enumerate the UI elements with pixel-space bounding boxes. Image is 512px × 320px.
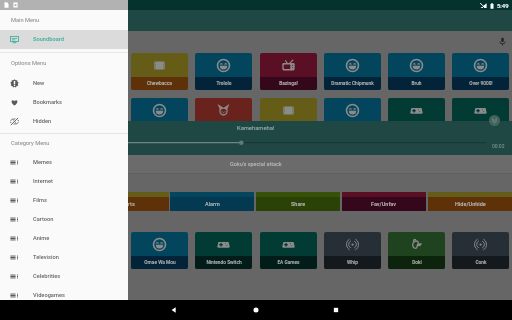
- button[interactable]: [452, 98, 509, 135]
- button[interactable]: Chewbacca: [131, 53, 188, 90]
- button[interactable]: Fav/Unfav: [342, 192, 426, 211]
- button[interactable]: Films: [0, 191, 128, 210]
- staticText: Fav/Unfav: [371, 201, 397, 207]
- button[interactable]: Back: [168, 304, 180, 316]
- staticText: Nintendo Switch: [206, 260, 242, 266]
- button[interactable]: Anime: [0, 229, 128, 248]
- button[interactable]: [324, 98, 381, 135]
- staticText: Cartoon: [33, 216, 54, 223]
- button[interactable]: Dramatic Chipmunk: [324, 53, 381, 90]
- button[interactable]: [260, 98, 317, 135]
- staticText: Celebrities: [33, 273, 61, 280]
- staticText: Chewbacca: [147, 81, 172, 87]
- button[interactable]: Hide/Unhide: [428, 192, 512, 211]
- button[interactable]: Nintendo Switch: [195, 232, 252, 269]
- button[interactable]: [388, 98, 445, 135]
- button[interactable]: New: [0, 74, 128, 93]
- button[interactable]: Alerts: [85, 192, 169, 211]
- button[interactable]: Conk: [452, 232, 509, 269]
- staticText: Anime: [33, 235, 50, 242]
- staticText: Videogames: [33, 292, 65, 299]
- button[interactable]: Trololo: [195, 53, 252, 90]
- button[interactable]: Hidden: [0, 112, 128, 131]
- staticText: Hidden: [33, 118, 52, 125]
- staticText: Doki: [412, 260, 422, 266]
- button[interactable]: [131, 98, 188, 135]
- button[interactable]: EA Games: [260, 232, 317, 269]
- button[interactable]: Memes: [0, 153, 128, 172]
- staticText: Kamehameha!: [237, 125, 275, 132]
- button[interactable]: Internet: [0, 172, 128, 191]
- staticText: 00:02: [492, 143, 505, 149]
- staticText: Soundboard: [33, 36, 64, 43]
- staticText: Conk: [475, 260, 487, 266]
- button[interactable]: Alarm: [170, 192, 254, 211]
- staticText: Whip: [347, 260, 358, 266]
- staticText: Bazinga!: [279, 81, 298, 87]
- staticText: Goku's special attack: [230, 161, 282, 167]
- button[interactable]: Collapse player: [489, 115, 500, 126]
- button[interactable]: Whip: [324, 232, 381, 269]
- button[interactable]: Doki: [388, 232, 445, 269]
- staticText: Hide/Unhide: [455, 201, 486, 207]
- staticText: Dramatic Chipmunk: [331, 81, 374, 87]
- button[interactable]: Videogames: [0, 286, 128, 305]
- staticText: Options Menu: [11, 60, 47, 67]
- button[interactable]: Share: [256, 192, 340, 211]
- staticText: EA Games: [277, 260, 300, 266]
- staticText: Memes: [33, 159, 52, 166]
- staticText: Main Menu: [11, 17, 40, 24]
- button[interactable]: Soundboard: [0, 30, 128, 49]
- button[interactable]: Over 9000!: [452, 53, 509, 90]
- button[interactable]: Bruh: [388, 53, 445, 90]
- staticText: Bruh: [411, 81, 422, 87]
- staticText: 5:49: [497, 2, 509, 9]
- staticText: New: [33, 80, 45, 87]
- button[interactable]: Home: [250, 304, 262, 316]
- staticText: Category Menu: [11, 140, 50, 147]
- staticText: Over 9000!: [469, 81, 493, 87]
- staticText: Bookmarks: [33, 99, 62, 106]
- staticText: Alarm: [205, 201, 220, 207]
- button[interactable]: Omae Wa Mou: [131, 232, 188, 269]
- staticText: Omae Wa Mou: [144, 260, 176, 266]
- staticText: Television: [33, 254, 59, 261]
- button[interactable]: Bazinga!: [260, 53, 317, 90]
- staticText: Internet: [33, 178, 53, 185]
- button[interactable]: [195, 98, 252, 135]
- button[interactable]: Voice search: [497, 36, 508, 47]
- staticText: Alerts: [120, 201, 135, 207]
- staticText: Films: [33, 197, 47, 204]
- button[interactable]: Cartoon: [0, 210, 128, 229]
- staticText: Trololo: [216, 81, 232, 87]
- button[interactable]: Bookmarks: [0, 93, 128, 112]
- staticText: Share: [291, 201, 306, 207]
- button[interactable]: Recent apps: [330, 304, 342, 316]
- button[interactable]: Television: [0, 248, 128, 267]
- button[interactable]: Celebrities: [0, 267, 128, 286]
